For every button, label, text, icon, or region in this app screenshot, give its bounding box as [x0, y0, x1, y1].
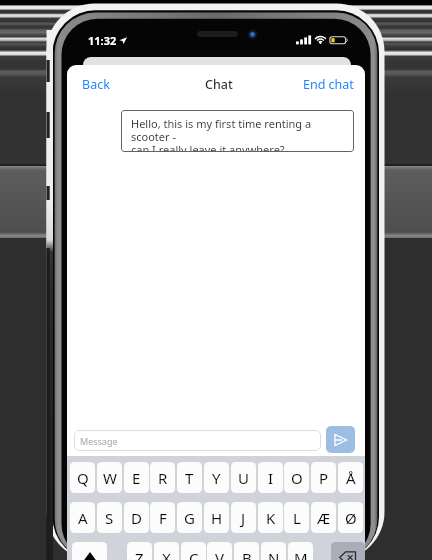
button[interactable]: B — [234, 542, 259, 560]
staticText: X — [162, 548, 171, 560]
staticText: A — [78, 508, 88, 528]
staticText: Chat — [205, 76, 233, 93]
staticText: S — [105, 508, 114, 528]
button[interactable]: W — [97, 462, 122, 493]
button[interactable]: O — [284, 462, 309, 493]
button[interactable]: K — [258, 502, 283, 533]
staticText: T — [185, 468, 194, 488]
staticText: E — [132, 468, 141, 488]
button[interactable]: F — [150, 502, 175, 533]
staticText: N — [268, 548, 280, 560]
staticText: 11:32 — [88, 33, 117, 48]
button[interactable]: G — [177, 502, 202, 533]
button[interactable]: U — [231, 462, 256, 493]
button[interactable]: Å — [338, 462, 363, 493]
button[interactable]: X — [154, 542, 179, 560]
staticText: F — [159, 508, 167, 528]
button[interactable]: R — [150, 462, 175, 493]
staticText: Å — [346, 468, 356, 488]
staticText: Hello, this is my first time renting a s… — [131, 116, 346, 152]
button[interactable]: Y — [204, 462, 229, 493]
button[interactable]: Delete — [331, 542, 365, 560]
staticText: W — [103, 468, 117, 488]
button[interactable]: D — [124, 502, 149, 533]
button[interactable]: S — [97, 502, 122, 533]
button[interactable]: L — [284, 502, 309, 533]
button[interactable]: Q — [70, 462, 95, 493]
staticText: I — [268, 468, 274, 488]
button[interactable]: Back — [74, 70, 118, 99]
button[interactable]: Send — [326, 426, 355, 453]
staticText: Q — [77, 468, 89, 488]
button[interactable]: P — [311, 462, 336, 493]
button[interactable]: Shift — [72, 542, 107, 560]
staticText: G — [184, 508, 195, 528]
button[interactable]: H — [204, 502, 229, 533]
staticText: D — [131, 508, 142, 528]
staticText: V — [215, 548, 225, 560]
button[interactable]: Æ — [311, 502, 336, 533]
staticText: Back — [82, 76, 110, 93]
staticText: K — [266, 508, 276, 528]
button[interactable]: J — [231, 502, 256, 533]
button[interactable]: M — [288, 542, 313, 560]
staticText: L — [293, 508, 301, 528]
button[interactable]: I — [258, 462, 283, 493]
staticText: R — [158, 468, 168, 488]
button[interactable]: Ø — [338, 502, 363, 533]
button[interactable]: Z — [127, 542, 152, 560]
staticText: Ø — [345, 508, 357, 528]
button[interactable]: C — [181, 542, 206, 560]
staticText: Message — [80, 435, 118, 447]
staticText: B — [242, 548, 252, 560]
staticText: Z — [135, 548, 144, 560]
button[interactable]: V — [207, 542, 232, 560]
button[interactable]: T — [177, 462, 202, 493]
button[interactable]: E — [124, 462, 149, 493]
staticText: Y — [212, 468, 221, 488]
button[interactable]: Hello, this is my first time renting a s… — [121, 110, 354, 152]
staticText: C — [189, 548, 199, 560]
staticText: M — [294, 548, 308, 560]
staticText: H — [211, 508, 223, 528]
staticText: O — [291, 468, 303, 488]
staticText: P — [319, 468, 329, 488]
button[interactable]: A — [70, 502, 95, 533]
button[interactable]: Message — [74, 430, 321, 451]
staticText: J — [241, 508, 246, 528]
staticText: U — [238, 468, 249, 488]
staticText: End chat — [303, 76, 354, 93]
staticText: Æ — [317, 508, 331, 528]
button[interactable]: End chat — [295, 70, 362, 99]
button[interactable]: N — [261, 542, 286, 560]
